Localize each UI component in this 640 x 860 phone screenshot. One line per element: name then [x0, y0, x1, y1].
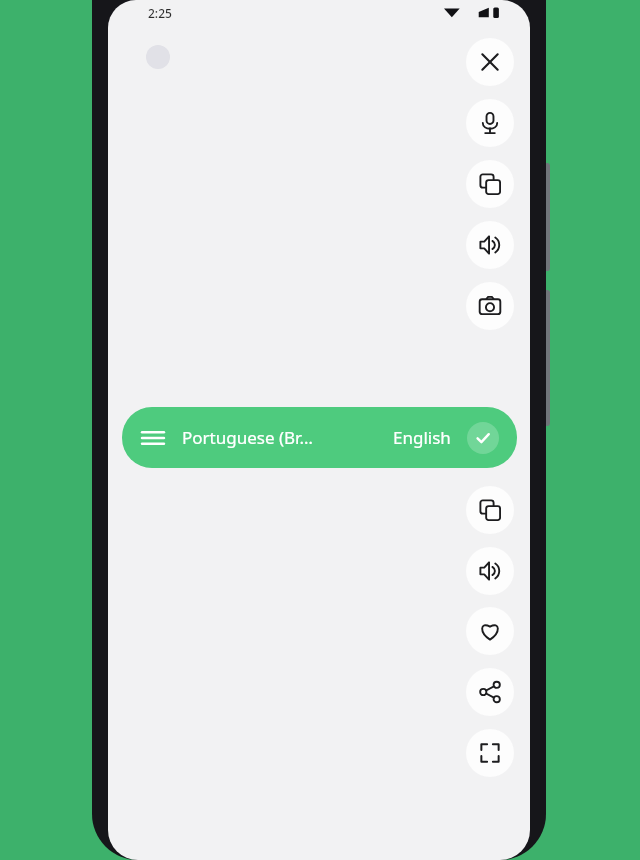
button[interactable]: Close — [466, 38, 514, 86]
button[interactable]: Selected — [467, 422, 499, 454]
button[interactable]: Camera — [466, 282, 514, 330]
button[interactable]: Copy — [466, 160, 514, 208]
button[interactable]: Microphone — [466, 99, 514, 147]
button[interactable]: Copy — [466, 486, 514, 534]
button[interactable]: Fullscreen — [466, 729, 514, 777]
button[interactable]: Favorite — [466, 607, 514, 655]
button[interactable]: Speak — [466, 221, 514, 269]
staticText: 2:25 — [148, 5, 172, 21]
button[interactable]: Portuguese (Br… — [122, 407, 517, 468]
staticText: Portuguese (Br… — [182, 426, 313, 449]
button[interactable]: Share — [466, 668, 514, 716]
button[interactable]: Speak — [466, 547, 514, 595]
staticText: English — [393, 426, 451, 449]
